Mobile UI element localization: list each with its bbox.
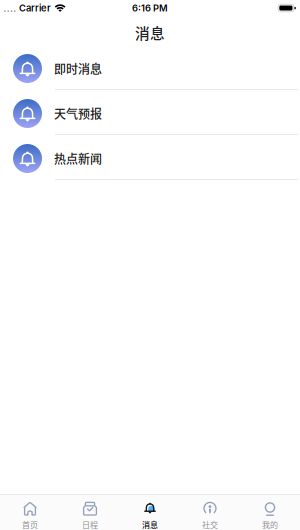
button[interactable]: 消息	[120, 495, 180, 530]
staticText: 6:16 PM	[132, 2, 168, 14]
staticText: 日程	[82, 519, 98, 530]
staticText: 首页	[22, 519, 38, 530]
button[interactable]: 热点新闻	[0, 135, 300, 180]
staticText: 天气预报	[54, 105, 102, 122]
staticText: 热点新闻	[54, 150, 102, 167]
staticText: 即时消息	[54, 60, 102, 77]
staticText: 消息	[142, 519, 158, 530]
button[interactable]: 即时消息	[0, 45, 300, 90]
button[interactable]: 首页	[0, 495, 60, 530]
button[interactable]: 天气预报	[0, 90, 300, 135]
button[interactable]: 社交	[180, 495, 240, 530]
button[interactable]: 我的	[240, 495, 300, 530]
staticText: 社交	[202, 519, 218, 530]
staticText: Carrier	[19, 2, 51, 14]
staticText: 消息	[135, 22, 165, 43]
button[interactable]: 日程	[60, 495, 120, 530]
staticText: 我的	[262, 519, 278, 530]
